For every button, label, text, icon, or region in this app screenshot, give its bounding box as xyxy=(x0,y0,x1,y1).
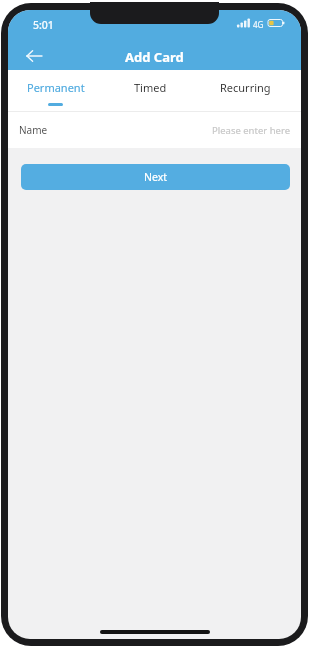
staticText: Recurring xyxy=(220,80,271,95)
button[interactable]: Next xyxy=(21,164,290,190)
staticText: Permanent xyxy=(27,80,85,95)
button[interactable]: Timed xyxy=(103,70,198,111)
staticText: 4G xyxy=(253,19,264,30)
staticText: Name xyxy=(19,123,48,137)
staticText: 5:01 xyxy=(33,18,54,32)
staticText: Timed xyxy=(134,80,167,95)
button[interactable] xyxy=(26,50,43,62)
staticText: Please enter here xyxy=(212,124,290,137)
button[interactable]: Permanent xyxy=(8,70,103,111)
button[interactable]: Name xyxy=(8,112,301,148)
staticText: Add Card xyxy=(125,48,184,66)
button[interactable]: Recurring xyxy=(198,70,293,111)
staticText: Next xyxy=(144,170,168,184)
